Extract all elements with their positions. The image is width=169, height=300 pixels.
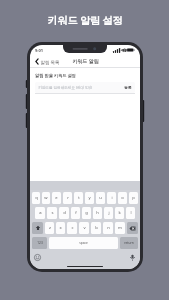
staticText: 키워드를 입력해주세요 (최대 5개) bbox=[38, 85, 92, 90]
staticText: 키워드 알림 설정 bbox=[47, 13, 123, 27]
staticText: f bbox=[75, 210, 77, 216]
button[interactable]: c bbox=[67, 222, 77, 234]
staticText: k bbox=[118, 210, 121, 216]
button[interactable]: i bbox=[107, 192, 116, 204]
button[interactable]: d bbox=[59, 207, 69, 219]
button[interactable]: r bbox=[63, 192, 72, 204]
button[interactable]: Emoji bbox=[34, 254, 41, 261]
staticText: space bbox=[79, 241, 88, 245]
button[interactable]: g bbox=[82, 207, 91, 219]
button[interactable]: n bbox=[103, 222, 113, 234]
staticText: i bbox=[111, 195, 113, 201]
staticText: 알림 받을 키워드 설정 bbox=[35, 73, 76, 79]
button[interactable]: t bbox=[74, 192, 83, 204]
button[interactable]: u bbox=[96, 192, 105, 204]
staticText: h bbox=[96, 210, 99, 216]
staticText: 9:01 bbox=[35, 48, 43, 53]
staticText: r bbox=[67, 195, 69, 201]
staticText: 등록 bbox=[124, 85, 132, 90]
button[interactable]: a bbox=[35, 207, 45, 219]
button[interactable]: q bbox=[32, 192, 40, 204]
staticText: p bbox=[132, 195, 135, 201]
staticText: v bbox=[83, 225, 86, 231]
button[interactable]: x bbox=[56, 222, 65, 234]
button[interactable]: p bbox=[129, 192, 138, 204]
staticText: 123 bbox=[37, 241, 43, 245]
staticText: n bbox=[107, 225, 110, 231]
button[interactable]: b bbox=[91, 222, 101, 234]
button[interactable]: 알림 목록 bbox=[34, 57, 61, 66]
button[interactable]: m bbox=[115, 222, 125, 234]
button[interactable]: y bbox=[85, 192, 94, 204]
button[interactable]: f bbox=[71, 207, 80, 219]
button[interactable]: v bbox=[79, 222, 89, 234]
staticText: d bbox=[63, 210, 66, 216]
button[interactable]: Shift bbox=[32, 222, 43, 234]
staticText: z bbox=[49, 225, 51, 231]
staticText: 알림 목록 bbox=[40, 59, 60, 65]
button[interactable]: o bbox=[118, 192, 127, 204]
button[interactable]: 키워드를 입력해주세요 (최대 5개) bbox=[35, 82, 135, 93]
button[interactable]: l bbox=[126, 207, 135, 219]
button[interactable]: h bbox=[93, 207, 102, 219]
button[interactable]: z bbox=[45, 222, 54, 234]
button[interactable]: return bbox=[120, 237, 138, 249]
staticText: e bbox=[55, 195, 58, 201]
button[interactable]: 등록 bbox=[121, 83, 135, 92]
staticText: j bbox=[108, 210, 110, 216]
staticText: c bbox=[71, 225, 74, 231]
staticText: l bbox=[130, 210, 132, 216]
staticText: a bbox=[39, 210, 42, 216]
button[interactable]: w bbox=[42, 192, 50, 204]
button[interactable]: s bbox=[47, 207, 57, 219]
button[interactable]: j bbox=[104, 207, 113, 219]
staticText: 키워드 알림 bbox=[72, 58, 99, 65]
staticText: q bbox=[35, 195, 38, 201]
staticText: m bbox=[118, 225, 122, 231]
staticText: s bbox=[51, 210, 54, 216]
button[interactable]: space bbox=[49, 237, 118, 249]
staticText: b bbox=[95, 225, 98, 231]
staticText: t bbox=[78, 195, 80, 201]
staticText: u bbox=[99, 195, 102, 201]
button[interactable]: k bbox=[115, 207, 124, 219]
staticText: y bbox=[88, 195, 91, 201]
button[interactable]: e bbox=[52, 192, 61, 204]
staticText: g bbox=[85, 210, 88, 216]
staticText: x bbox=[59, 225, 62, 231]
button[interactable]: Delete bbox=[127, 222, 138, 234]
button[interactable]: 123 bbox=[32, 237, 47, 249]
staticText: o bbox=[121, 195, 124, 201]
staticText: w bbox=[44, 195, 48, 201]
staticText: return bbox=[124, 241, 134, 245]
button[interactable]: Microphone bbox=[129, 254, 136, 261]
